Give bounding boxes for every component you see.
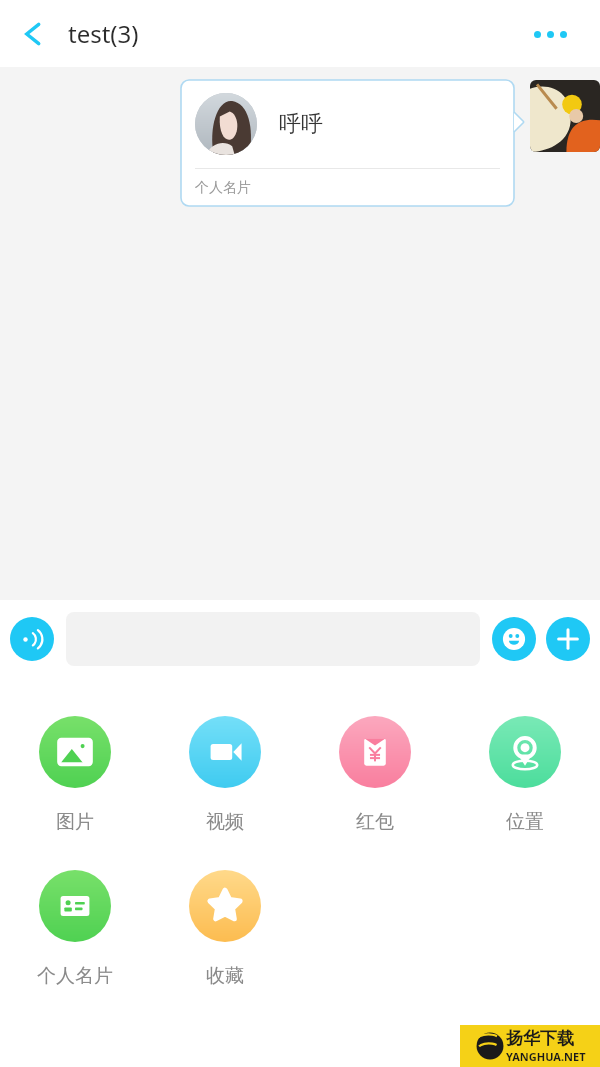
button[interactable]: Add attachment (546, 617, 590, 661)
button[interactable]: Sender avatar (530, 80, 600, 152)
button[interactable]: Back (6, 7, 60, 61)
button[interactable]: Voice message (10, 617, 54, 661)
staticText: 位置 (506, 810, 544, 834)
staticText: 呼呼 (279, 110, 323, 138)
button[interactable]: 位置 (450, 716, 600, 834)
button[interactable]: 个人名片 (0, 870, 150, 988)
staticText: 视频 (206, 810, 244, 834)
staticText: 收藏 (206, 964, 244, 988)
button[interactable]: 红包 (300, 716, 450, 834)
button[interactable]: 呼呼 (181, 80, 514, 206)
button[interactable]: 图片 (0, 716, 150, 834)
staticText: 个人名片 (195, 179, 251, 197)
staticText: 图片 (56, 810, 94, 834)
staticText: 扬华下载 (506, 1028, 574, 1049)
button[interactable]: Emoji (492, 617, 536, 661)
staticText: 红包 (356, 810, 394, 834)
staticText: test(3) (68, 17, 139, 50)
button[interactable]: 收藏 (150, 870, 300, 988)
button[interactable]: 视频 (150, 716, 300, 834)
staticText: YANGHUA.NET (506, 1049, 586, 1064)
staticText: 个人名片 (37, 964, 113, 988)
button[interactable]: More options (520, 10, 580, 58)
